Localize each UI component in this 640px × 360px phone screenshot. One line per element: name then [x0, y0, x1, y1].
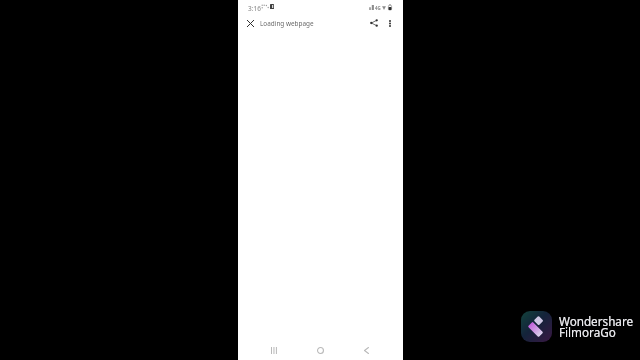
staticText: Wondershare: [559, 313, 634, 329]
button[interactable]: Close: [242, 15, 258, 31]
button[interactable]: Home: [312, 342, 328, 358]
button[interactable]: Back: [358, 342, 374, 358]
staticText: 4G: [375, 5, 381, 11]
staticText: Loading webpage: [260, 19, 314, 28]
button[interactable]: Share: [366, 15, 382, 31]
button[interactable]: More options: [382, 15, 398, 31]
staticText: 3:16: [248, 4, 261, 13]
button[interactable]: Recent apps: [266, 342, 282, 358]
staticText: FilmoraGo: [559, 324, 616, 340]
